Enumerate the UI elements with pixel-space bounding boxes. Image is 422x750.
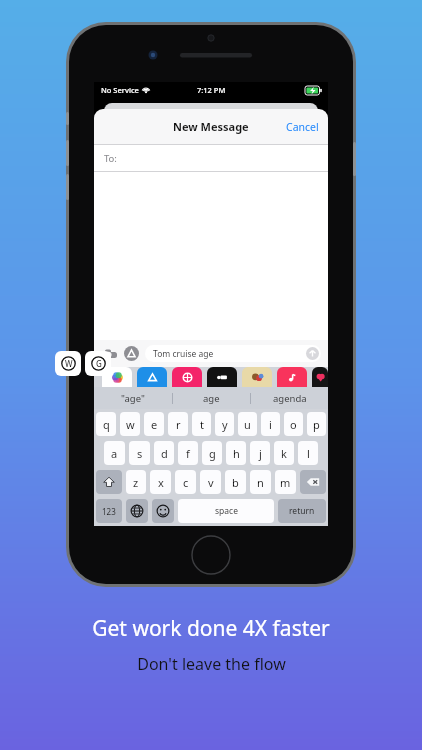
staticText: g bbox=[209, 446, 216, 461]
button[interactable]: age bbox=[173, 387, 250, 409]
staticText: Cancel bbox=[286, 120, 319, 134]
button[interactable]: m bbox=[275, 470, 296, 494]
staticText: Don't leave the flow bbox=[137, 653, 286, 675]
staticText: return bbox=[289, 505, 315, 517]
button[interactable]: "age" bbox=[94, 387, 172, 409]
button[interactable]: x bbox=[150, 470, 171, 494]
staticText: h bbox=[233, 446, 240, 461]
button[interactable]: n bbox=[250, 470, 271, 494]
button[interactable]: Globe bbox=[126, 499, 148, 523]
staticText: agenda bbox=[273, 392, 307, 405]
button[interactable]: w bbox=[120, 412, 140, 436]
staticText: j bbox=[259, 446, 262, 461]
button[interactable]: p bbox=[307, 412, 326, 436]
button[interactable]: App Store bbox=[124, 346, 139, 361]
staticText: New Message bbox=[173, 119, 249, 134]
button[interactable]: f bbox=[178, 441, 198, 465]
staticText: y bbox=[222, 417, 228, 432]
button[interactable]: v bbox=[200, 470, 221, 494]
button[interactable]: App 4 bbox=[242, 367, 272, 387]
button[interactable]: z bbox=[126, 470, 146, 494]
button[interactable]: a bbox=[104, 441, 125, 465]
button[interactable]: space bbox=[178, 499, 274, 523]
staticText: a bbox=[111, 446, 118, 461]
staticText: q bbox=[103, 417, 110, 432]
button[interactable]: h bbox=[226, 441, 246, 465]
staticText: No Service bbox=[101, 85, 139, 95]
staticText: age bbox=[203, 392, 220, 405]
staticText: l bbox=[307, 446, 310, 461]
staticText: p bbox=[313, 417, 320, 432]
staticText: m bbox=[280, 475, 291, 490]
staticText: r bbox=[176, 417, 181, 432]
button[interactable]: d bbox=[154, 441, 174, 465]
button[interactable]: q bbox=[96, 412, 116, 436]
button[interactable]: Emoji bbox=[152, 499, 174, 523]
button[interactable]: j bbox=[250, 441, 270, 465]
staticText: space bbox=[215, 505, 238, 517]
button[interactable]: agenda bbox=[251, 387, 328, 409]
button[interactable]: Delete bbox=[300, 470, 326, 494]
button[interactable]: o bbox=[284, 412, 303, 436]
staticText: 7:12 PM bbox=[197, 85, 226, 95]
staticText: To: bbox=[104, 152, 117, 165]
staticText: 123 bbox=[102, 506, 116, 517]
staticText: t bbox=[200, 417, 204, 432]
button[interactable]: Send bbox=[306, 347, 319, 360]
staticText: Tom cruise age bbox=[153, 348, 214, 360]
button[interactable]: Camera bbox=[101, 345, 118, 362]
button[interactable]: t bbox=[192, 412, 211, 436]
button[interactable]: r bbox=[168, 412, 188, 436]
button[interactable]: return bbox=[278, 499, 326, 523]
staticText: n bbox=[257, 475, 264, 490]
button[interactable]: Shortcut G bbox=[85, 351, 111, 376]
button[interactable]: App 5 bbox=[277, 367, 307, 387]
button[interactable]: Shortcut W bbox=[55, 351, 81, 376]
button[interactable]: s bbox=[129, 441, 150, 465]
staticText: "age" bbox=[121, 392, 145, 405]
staticText: c bbox=[183, 475, 189, 490]
staticText: W bbox=[65, 358, 73, 369]
staticText: f bbox=[186, 446, 190, 461]
button[interactable]: e bbox=[144, 412, 164, 436]
staticText: s bbox=[137, 446, 143, 461]
button[interactable]: App 0 bbox=[102, 367, 132, 387]
button[interactable]: App 1 bbox=[137, 367, 167, 387]
button[interactable]: b bbox=[225, 470, 246, 494]
button[interactable]: y bbox=[215, 412, 234, 436]
staticText: z bbox=[133, 475, 139, 490]
button[interactable]: Shift bbox=[96, 470, 122, 494]
staticText: v bbox=[208, 475, 214, 490]
button[interactable]: App 2 bbox=[172, 367, 202, 387]
button[interactable]: u bbox=[238, 412, 257, 436]
button[interactable]: i bbox=[261, 412, 280, 436]
button[interactable]: 123 bbox=[96, 499, 122, 523]
button[interactable]: c bbox=[175, 470, 196, 494]
staticText: G bbox=[96, 358, 102, 369]
button[interactable]: k bbox=[274, 441, 294, 465]
staticText: i bbox=[269, 417, 272, 432]
staticText: o bbox=[290, 417, 297, 432]
button[interactable]: g bbox=[202, 441, 222, 465]
button[interactable]: Cancel bbox=[277, 114, 328, 140]
staticText: b bbox=[232, 475, 239, 490]
button[interactable]: App 3 bbox=[207, 367, 237, 387]
staticText: w bbox=[126, 417, 135, 432]
button[interactable]: Tom cruise age bbox=[145, 345, 321, 362]
staticText: k bbox=[281, 446, 287, 461]
staticText: u bbox=[244, 417, 251, 432]
staticText: e bbox=[151, 417, 158, 432]
button[interactable]: l bbox=[298, 441, 318, 465]
staticText: Get work done 4X faster bbox=[92, 614, 330, 643]
staticText: x bbox=[158, 475, 164, 490]
button[interactable]: App 6 bbox=[312, 367, 328, 387]
staticText: d bbox=[161, 446, 168, 461]
